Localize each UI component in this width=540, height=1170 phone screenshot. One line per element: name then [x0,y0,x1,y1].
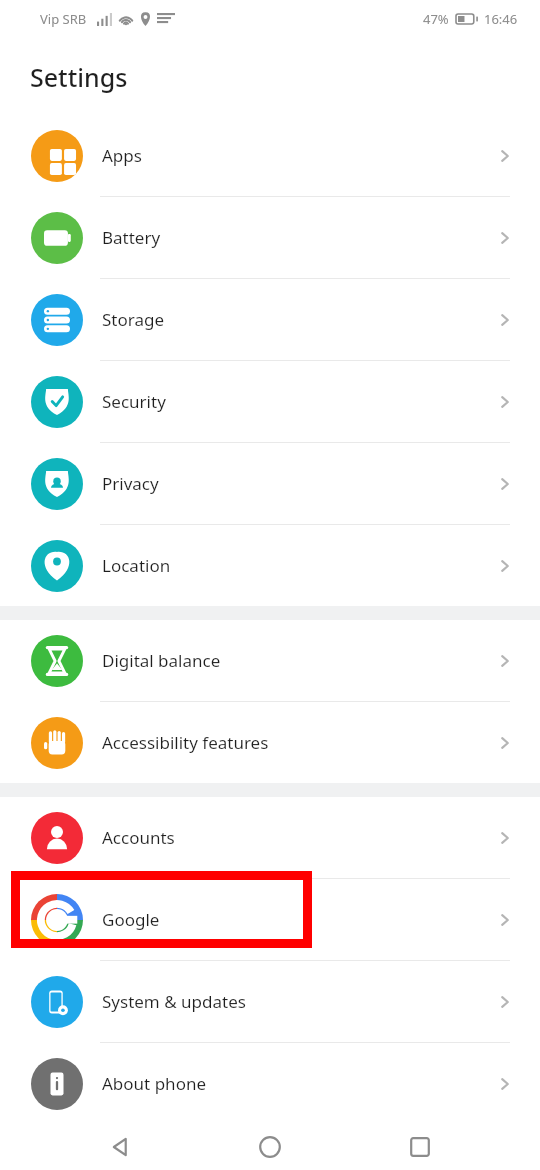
button[interactable]: Apps [0,115,540,196]
button[interactable]: Digital balance [0,620,540,701]
staticText: About phone [102,1072,207,1095]
staticText: Storage [102,308,165,331]
button[interactable]: Battery [0,197,540,278]
button[interactable]: Security [0,361,540,442]
staticText: Settings [30,60,128,94]
staticText: Privacy [102,472,159,495]
button[interactable]: Location [0,525,540,606]
staticText: System & updates [102,990,246,1013]
button[interactable]: Accounts [0,797,540,878]
staticText: 47% [423,10,449,28]
staticText: Location [102,554,171,577]
button[interactable]: Storage [0,279,540,360]
staticText: Security [102,390,166,413]
staticText: Battery [102,226,161,249]
button[interactable]: Accessibility features [0,702,540,783]
staticText: Vip SRB [40,10,87,28]
button[interactable]: Back [90,1124,150,1170]
staticText: Google [102,908,160,931]
staticText: 16:46 [484,10,518,28]
staticText: Apps [102,144,142,167]
staticText: Accessibility features [102,731,269,754]
button[interactable]: Google [0,879,540,960]
button[interactable]: Privacy [0,443,540,524]
button[interactable]: Home [240,1124,300,1170]
button[interactable]: About phone [0,1043,540,1124]
staticText: Digital balance [102,649,221,672]
button[interactable]: System & updates [0,961,540,1042]
button[interactable]: Recents [390,1124,450,1170]
staticText: Accounts [102,826,175,849]
